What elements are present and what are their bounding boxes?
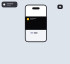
button[interactable]: App — [57, 5, 63, 9]
button[interactable]: Notification — [2, 2, 17, 7]
